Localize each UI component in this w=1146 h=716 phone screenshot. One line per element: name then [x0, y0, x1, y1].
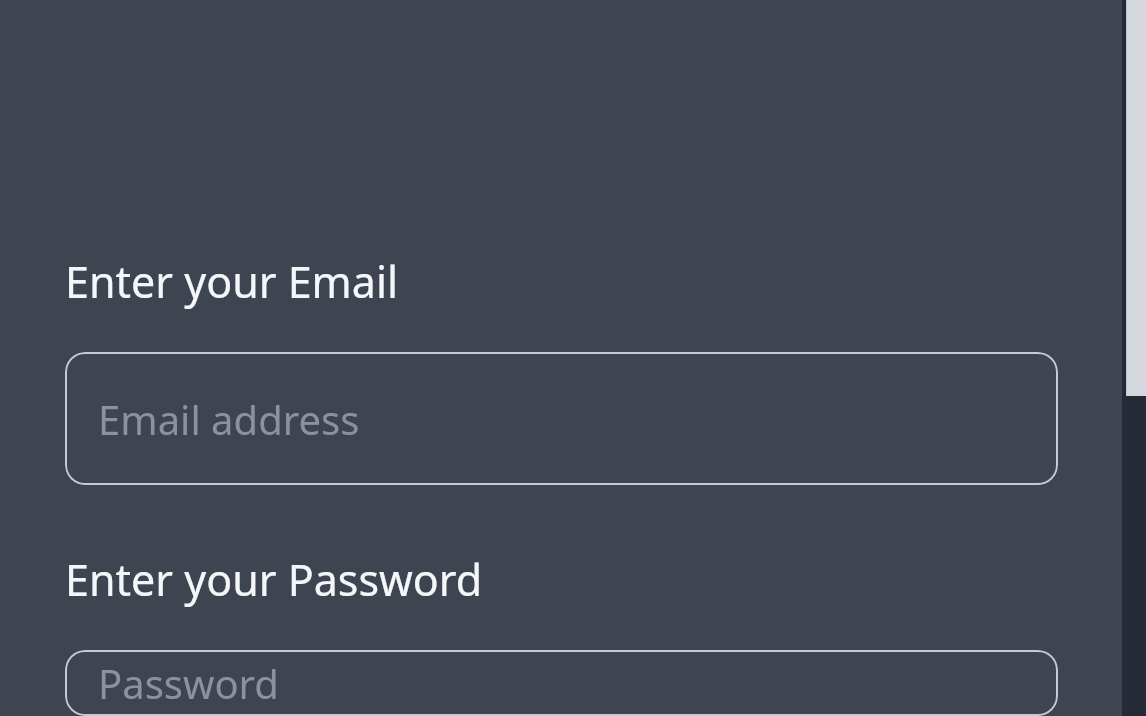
- staticText: Enter your Password: [65, 550, 483, 609]
- button[interactable]: Password: [65, 650, 1058, 716]
- staticText: Password: [98, 656, 279, 710]
- other: Scrollbar: [1122, 0, 1146, 716]
- staticText: Enter your Email: [65, 252, 399, 311]
- staticText: Email address: [98, 392, 360, 446]
- button[interactable]: Email address: [65, 352, 1058, 485]
